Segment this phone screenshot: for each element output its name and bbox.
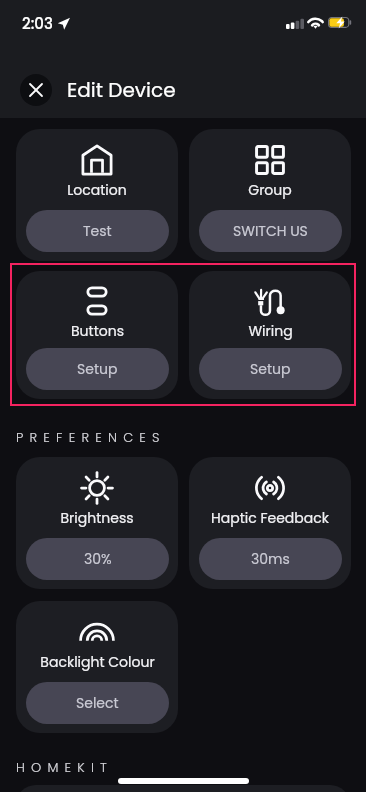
staticText: SWITCH US [233, 221, 308, 241]
staticText: 30% [84, 549, 112, 569]
button[interactable]: Close [20, 74, 52, 106]
staticText: Backlight Colour [40, 652, 155, 672]
staticText: 30ms [251, 549, 290, 569]
button[interactable]: Buttons [16, 271, 178, 399]
staticText: Test [83, 221, 112, 241]
staticText: Wiring [248, 321, 293, 341]
button[interactable]: Location [16, 129, 178, 261]
button[interactable]: Wiring [189, 271, 351, 399]
button[interactable] [16, 785, 350, 792]
button[interactable]: Test [26, 210, 169, 252]
button[interactable]: Select [26, 682, 169, 724]
staticText: Edit Device [67, 76, 176, 104]
button[interactable]: Setup [26, 348, 169, 390]
button[interactable]: Setup [199, 348, 342, 390]
button[interactable]: Group [189, 129, 351, 261]
button[interactable]: SWITCH US [199, 210, 342, 252]
button[interactable]: 30ms [199, 538, 342, 580]
staticText: HOMEKIT [16, 758, 114, 776]
button[interactable]: Brightness [16, 457, 178, 589]
button[interactable]: 30% [26, 538, 169, 580]
staticText: Brightness [60, 508, 134, 528]
staticText: Setup [250, 359, 291, 379]
staticText: PREFERENCES [16, 428, 166, 446]
staticText: Group [248, 180, 292, 200]
button[interactable]: Haptic Feedback [189, 457, 351, 589]
staticText: Setup [77, 359, 118, 379]
staticText: Select [76, 693, 119, 713]
staticText: 2:03 [22, 13, 53, 34]
button[interactable]: Backlight Colour [16, 601, 178, 733]
staticText: Buttons [71, 321, 124, 341]
button[interactable]: Highlighted section [10, 263, 356, 406]
staticText: Location [67, 180, 127, 200]
staticText: Haptic Feedback [211, 508, 329, 528]
